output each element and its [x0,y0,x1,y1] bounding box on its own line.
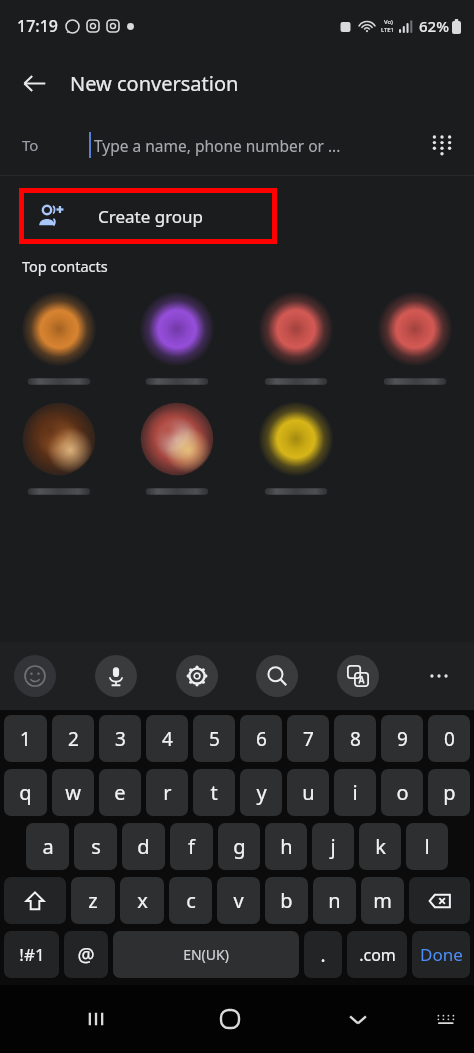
button[interactable]: h [265,823,307,870]
button[interactable] [118,292,236,388]
button[interactable] [236,292,355,388]
button[interactable]: Back [10,59,58,107]
staticText: 5 [209,726,220,752]
staticText: g [233,833,246,860]
staticText: k [375,833,386,860]
button[interactable]: Translate [337,655,379,697]
button[interactable]: Search [256,655,298,697]
staticText: h [280,833,293,860]
button[interactable]: EN(UK) [113,931,299,978]
button[interactable]: e [99,769,141,816]
button[interactable]: l [406,823,448,870]
button[interactable]: 1 [4,715,47,762]
button[interactable]: 9 [381,715,423,762]
staticText: Create group [98,205,204,228]
button[interactable]: o [381,769,423,816]
button[interactable]: Home [206,995,254,1043]
button[interactable]: Backspace [409,877,470,924]
staticText: p [443,779,456,806]
button[interactable]: Keyboard indicator [428,1001,464,1037]
staticText: 2 [68,726,79,752]
staticText: 1 [20,726,31,752]
staticText: y [256,779,267,806]
button[interactable]: 8 [334,715,376,762]
staticText: EN(UK) [183,945,229,964]
staticText: a [42,833,54,860]
staticText: m [373,887,392,914]
button[interactable]: @ [64,931,108,978]
button[interactable]: v [217,877,260,924]
button[interactable]: Hide keyboard [334,995,382,1043]
staticText: 62% [419,16,449,36]
button[interactable] [355,292,474,388]
button[interactable]: !#1 [4,931,59,978]
button[interactable]: k [359,823,401,870]
button[interactable]: a [26,823,69,870]
staticText: 9 [397,726,408,752]
staticText: LTE1 [381,26,395,34]
button[interactable]: 3 [99,715,141,762]
button[interactable]: Shift [4,877,66,924]
button[interactable]: g [218,823,260,870]
staticText: e [114,779,126,806]
button[interactable]: More options [418,655,460,697]
button[interactable] [0,402,118,498]
button[interactable]: 4 [146,715,188,762]
staticText: l [424,833,430,860]
button[interactable] [118,402,236,498]
button[interactable]: 2 [52,715,94,762]
staticText: j [330,833,336,860]
staticText: Top contacts [22,256,108,276]
button[interactable]: Recent apps [72,995,120,1043]
button[interactable]: 7 [287,715,329,762]
button[interactable]: t [193,769,235,816]
staticText: !#1 [19,943,45,966]
staticText: 17:19 [17,15,58,37]
staticText: b [280,887,293,914]
button[interactable]: .com [347,931,407,978]
button[interactable]: i [334,769,376,816]
button[interactable]: y [240,769,282,816]
button[interactable]: 6 [240,715,282,762]
staticText: d [137,833,150,860]
button[interactable]: . [304,931,342,978]
button[interactable]: Dialpad [418,121,466,169]
staticText: Vo) [384,18,393,26]
button[interactable]: Emoji [14,655,56,697]
staticText: z [88,887,98,914]
button[interactable]: Done [412,931,470,978]
staticText: t [210,779,218,806]
button[interactable]: u [287,769,329,816]
button[interactable]: j [312,823,354,870]
staticText: q [19,779,32,806]
button[interactable]: w [52,769,94,816]
button[interactable]: z [71,877,115,924]
button[interactable]: Create group [19,188,277,244]
button[interactable]: b [265,877,308,924]
button[interactable]: n [313,877,356,924]
staticText: 0 [444,726,455,752]
staticText: o [396,779,409,806]
button[interactable]: 5 [193,715,235,762]
staticText: r [163,779,172,806]
staticText: New conversation [70,70,239,97]
button[interactable]: 0 [428,715,470,762]
button[interactable]: s [74,823,117,870]
button[interactable]: Voice input [95,655,137,697]
button[interactable] [236,402,355,498]
button[interactable] [0,292,118,388]
staticText: Type a name, phone number or ... [94,135,341,156]
button[interactable]: r [146,769,188,816]
staticText: @ [77,942,95,968]
staticText: To [22,135,39,155]
staticText: .com [359,944,396,966]
button[interactable]: Settings [176,655,218,697]
button[interactable]: q [4,769,47,816]
button[interactable]: c [169,877,212,924]
button[interactable]: p [428,769,470,816]
button[interactable]: x [120,877,164,924]
button[interactable]: d [122,823,165,870]
button[interactable]: m [361,877,404,924]
staticText: Done [420,943,463,966]
button[interactable]: f [170,823,213,870]
